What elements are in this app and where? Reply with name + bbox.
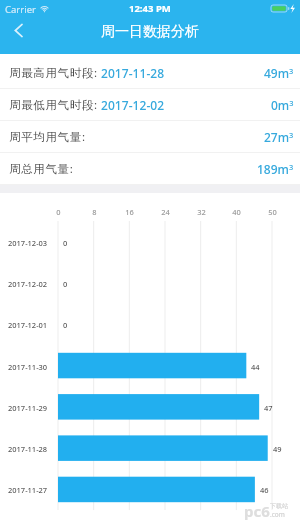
button[interactable]: 周最高用气时段:: [0, 57, 300, 88]
staticText: 44: [251, 362, 260, 372]
staticText: .com: [270, 510, 285, 519]
staticText: 50: [268, 207, 277, 217]
staticText: pc6: [244, 501, 270, 521]
staticText: 2017-11-27: [8, 485, 48, 495]
button[interactable]: Back: [0, 19, 38, 54]
staticText: 0: [63, 320, 68, 330]
staticText: Carrier: [5, 3, 36, 16]
staticText: 40: [232, 207, 241, 217]
staticText: 下载站: [270, 502, 288, 510]
staticText: 0: [63, 238, 68, 248]
staticText: 46: [260, 485, 269, 495]
staticText: 47: [264, 403, 273, 413]
staticText: 周一日数据分析: [101, 23, 199, 41]
staticText: 8: [92, 207, 97, 217]
staticText: 27m3: [264, 129, 294, 145]
staticText: 32: [197, 207, 206, 217]
staticText: 2017-12-02: [8, 279, 48, 289]
staticText: 49m3: [264, 65, 294, 81]
staticText: 周最低用气时段:: [9, 97, 98, 113]
staticText: 0: [63, 279, 68, 289]
button[interactable]: 周平均用气量:: [0, 121, 300, 152]
staticText: 2017-12-02: [101, 97, 165, 113]
staticText: 周总用气量:: [9, 161, 74, 177]
staticText: 2017-11-28: [8, 444, 48, 454]
staticText: 2017-11-30: [8, 362, 48, 372]
staticText: 0: [56, 207, 61, 217]
staticText: 49: [273, 444, 282, 454]
staticText: 12:43 PM: [129, 2, 171, 15]
staticText: 16: [125, 207, 134, 217]
staticText: 周平均用气量:: [9, 129, 86, 145]
staticText: 2017-12-03: [8, 238, 48, 248]
staticText: 0m3: [271, 97, 294, 113]
staticText: 2017-11-29: [8, 403, 48, 413]
button[interactable]: 周最低用气时段:: [0, 89, 300, 120]
staticText: 2017-11-28: [101, 65, 165, 81]
button[interactable]: 周总用气量:: [0, 153, 300, 184]
staticText: 2017-12-01: [8, 320, 48, 330]
staticText: 24: [161, 207, 170, 217]
staticText: 周最高用气时段:: [9, 65, 98, 81]
staticText: 189m3: [257, 161, 294, 177]
